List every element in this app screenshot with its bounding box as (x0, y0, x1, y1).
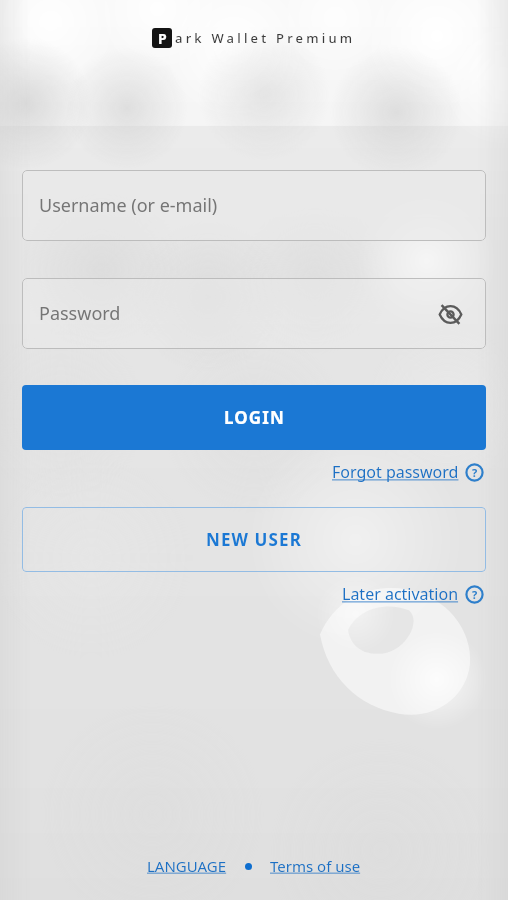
button[interactable]: LANGUAGE (143, 852, 231, 880)
staticText: Terms of use (270, 856, 361, 876)
button[interactable]: Username (or e-mail) (22, 170, 486, 241)
staticText: ? (472, 465, 478, 480)
button[interactable]: Show password (433, 297, 467, 331)
staticText: Password (39, 301, 121, 326)
button[interactable]: NEW USER (22, 507, 486, 572)
staticText: ark Wallet Premium (175, 29, 356, 47)
button[interactable]: LOGIN (22, 385, 486, 450)
staticText: LOGIN (224, 406, 285, 429)
staticText: ? (472, 587, 478, 602)
button[interactable]: Terms of use (266, 852, 365, 880)
staticText: P (158, 29, 167, 48)
staticText: Forgot password (332, 461, 459, 483)
staticText: Later activation (342, 583, 459, 605)
staticText: LANGUAGE (147, 856, 227, 876)
staticText: NEW USER (206, 528, 302, 551)
staticText: Username (or e-mail) (39, 193, 218, 218)
button[interactable]: Later activation (340, 581, 486, 607)
button[interactable]: Password (22, 278, 486, 349)
button[interactable]: Forgot password (330, 459, 486, 485)
